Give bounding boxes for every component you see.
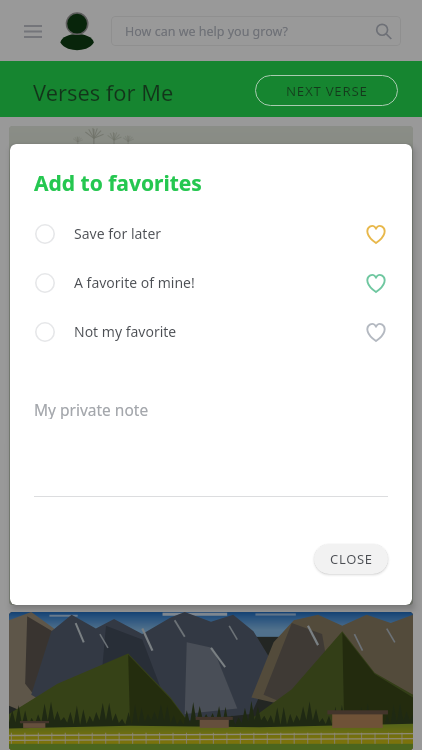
button[interactable]: Save for later	[10, 209, 412, 258]
staticText: A favorite of mine!	[74, 273, 195, 292]
button[interactable]: Menu	[17, 15, 49, 47]
button[interactable]: A favorite of mine!	[10, 258, 412, 307]
button[interactable]: How can we help you grow?	[111, 16, 401, 46]
staticText: NEXT VERSE	[286, 82, 368, 100]
staticText: Add to favorites	[34, 169, 202, 198]
button[interactable]: CLOSE	[314, 544, 388, 574]
staticText: My private note	[34, 399, 149, 419]
button[interactable]: Account	[58, 11, 96, 49]
staticText: How can we help you grow?	[125, 23, 375, 40]
staticText: Save for later	[74, 224, 162, 243]
button[interactable]: NEXT VERSE	[255, 75, 398, 106]
staticText: CLOSE	[330, 550, 373, 568]
staticText: Verses for Me	[33, 78, 174, 108]
button[interactable]: Not my favorite	[10, 307, 412, 356]
staticText: Not my favorite	[74, 322, 177, 341]
